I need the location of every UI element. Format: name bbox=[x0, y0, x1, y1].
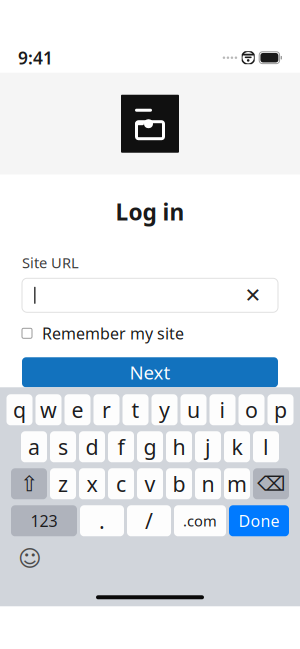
button[interactable]: l bbox=[253, 431, 279, 462]
button[interactable]: k bbox=[224, 431, 250, 462]
button[interactable]: f bbox=[108, 431, 134, 462]
button[interactable]: .com bbox=[174, 505, 226, 536]
staticText: y bbox=[159, 396, 170, 424]
button[interactable]: b bbox=[166, 468, 192, 499]
staticText: ✕ bbox=[244, 284, 261, 307]
button[interactable]: z bbox=[50, 468, 76, 499]
staticText: e bbox=[71, 396, 83, 424]
button[interactable]: o bbox=[238, 394, 264, 425]
button[interactable]: Delete bbox=[253, 468, 289, 499]
staticText: c bbox=[116, 470, 126, 498]
button[interactable]: y bbox=[151, 394, 177, 425]
button[interactable]: r bbox=[93, 394, 119, 425]
button[interactable]: s bbox=[50, 431, 76, 462]
staticText: Next bbox=[129, 360, 170, 385]
staticText: Remember my site bbox=[42, 323, 184, 344]
staticText: w bbox=[40, 396, 57, 424]
button[interactable]: e bbox=[64, 394, 90, 425]
staticText: q bbox=[13, 396, 26, 424]
staticText: x bbox=[86, 470, 97, 498]
staticText: ⌫ bbox=[257, 472, 285, 495]
staticText: ☺ bbox=[18, 545, 42, 571]
staticText: s bbox=[58, 433, 68, 461]
button[interactable]: 123 bbox=[11, 505, 77, 536]
button[interactable]: Clear text bbox=[240, 280, 266, 310]
staticText: b bbox=[172, 470, 185, 498]
button[interactable]: i bbox=[209, 394, 235, 425]
button[interactable]: t bbox=[122, 394, 148, 425]
button[interactable]: m bbox=[224, 468, 250, 499]
staticText: n bbox=[201, 470, 214, 498]
button[interactable]: Remember my site bbox=[22, 323, 278, 343]
staticText: j bbox=[205, 433, 211, 461]
button[interactable]: w bbox=[35, 394, 61, 425]
staticText: Log in bbox=[115, 197, 184, 227]
staticText: z bbox=[58, 470, 68, 498]
staticText: 9:41 bbox=[18, 46, 53, 69]
staticText: ⇧ bbox=[20, 472, 38, 496]
staticText: r bbox=[102, 396, 111, 424]
staticText: i bbox=[219, 396, 225, 424]
button[interactable]: h bbox=[166, 431, 192, 462]
button[interactable]: / bbox=[127, 505, 171, 536]
staticText: g bbox=[143, 433, 156, 461]
button[interactable]: x bbox=[79, 468, 105, 499]
staticText: .com bbox=[183, 511, 217, 531]
button[interactable]: c bbox=[108, 468, 134, 499]
button[interactable]: j bbox=[195, 431, 221, 462]
staticText: Done bbox=[238, 510, 279, 531]
button[interactable]: . bbox=[80, 505, 124, 536]
staticText: l bbox=[263, 433, 269, 461]
staticText: 123 bbox=[30, 510, 57, 531]
button[interactable]: v bbox=[137, 468, 163, 499]
staticText: m bbox=[227, 470, 247, 498]
staticText: t bbox=[131, 396, 139, 424]
staticText: Site URL bbox=[22, 253, 79, 272]
button[interactable]: u bbox=[180, 394, 206, 425]
button[interactable]: d bbox=[79, 431, 105, 462]
button[interactable]: q bbox=[6, 394, 32, 425]
staticText: f bbox=[117, 433, 124, 461]
button[interactable]: Shift bbox=[11, 468, 47, 499]
button[interactable]: a bbox=[21, 431, 47, 462]
staticText: / bbox=[145, 507, 153, 535]
button[interactable]: n bbox=[195, 468, 221, 499]
button[interactable]: Next bbox=[22, 357, 278, 387]
staticText: v bbox=[144, 470, 155, 498]
staticText: u bbox=[187, 396, 200, 424]
button[interactable]: Done bbox=[229, 505, 289, 536]
button[interactable]: p bbox=[267, 394, 293, 425]
staticText: k bbox=[231, 433, 242, 461]
staticText: d bbox=[85, 433, 98, 461]
button[interactable]: Emoji keyboard bbox=[15, 545, 45, 571]
button[interactable]: g bbox=[137, 431, 163, 462]
staticText: p bbox=[274, 396, 287, 424]
staticText: o bbox=[245, 396, 258, 424]
staticText: h bbox=[172, 433, 185, 461]
staticText: . bbox=[99, 507, 105, 535]
staticText: a bbox=[28, 433, 40, 461]
